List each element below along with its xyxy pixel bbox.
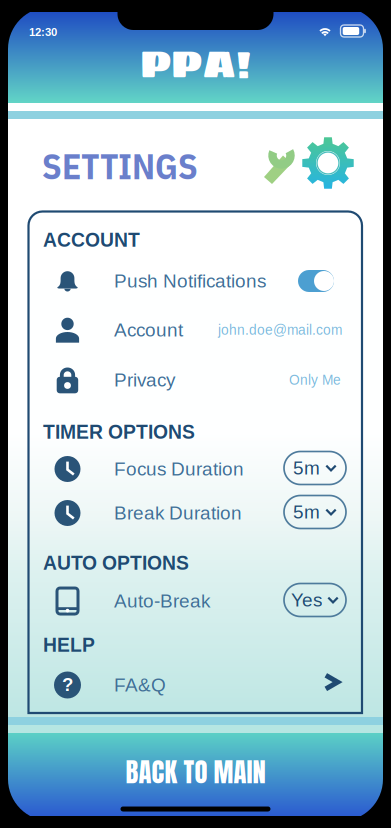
button[interactable]	[30, 578, 360, 624]
staticText: 12:30	[29, 26, 57, 38]
button[interactable]: Yes	[284, 583, 346, 616]
staticText: john.doe@mail.com	[218, 322, 342, 338]
staticText: Yes	[291, 589, 322, 611]
button[interactable]: 5m	[284, 495, 346, 528]
staticText: ?	[62, 674, 73, 695]
button[interactable]	[30, 307, 360, 353]
button[interactable]: Push Notifications toggle	[298, 270, 334, 292]
staticText: Auto-Break	[114, 590, 210, 612]
staticText: Push Notifications	[114, 270, 266, 292]
staticText: TIMER OPTIONS	[43, 421, 195, 443]
staticText: Break Duration	[114, 502, 242, 524]
staticText: 5m	[293, 457, 320, 479]
staticText: BACK TO MAIN	[125, 752, 265, 792]
staticText: Only Me	[289, 372, 341, 388]
button[interactable]	[30, 446, 360, 492]
button[interactable]: ?	[30, 662, 360, 708]
staticText: PPA!	[140, 33, 251, 95]
staticText: SETTINGS	[42, 143, 198, 189]
staticText: 5m	[293, 501, 320, 523]
staticText: HELP	[43, 634, 95, 656]
staticText: ACCOUNT	[43, 229, 140, 251]
staticText: FA&Q	[114, 674, 166, 696]
button[interactable]: BACK TO MAIN	[8, 745, 383, 799]
button[interactable]: 5m	[284, 451, 346, 484]
staticText: Privacy	[114, 369, 175, 391]
button[interactable]	[30, 490, 360, 536]
button[interactable]	[30, 357, 360, 403]
button[interactable]: Open FAQ	[323, 672, 341, 691]
staticText: Account	[114, 319, 183, 341]
button[interactable]	[30, 258, 360, 304]
staticText: Focus Duration	[114, 458, 244, 480]
staticText: AUTO OPTIONS	[43, 552, 189, 574]
